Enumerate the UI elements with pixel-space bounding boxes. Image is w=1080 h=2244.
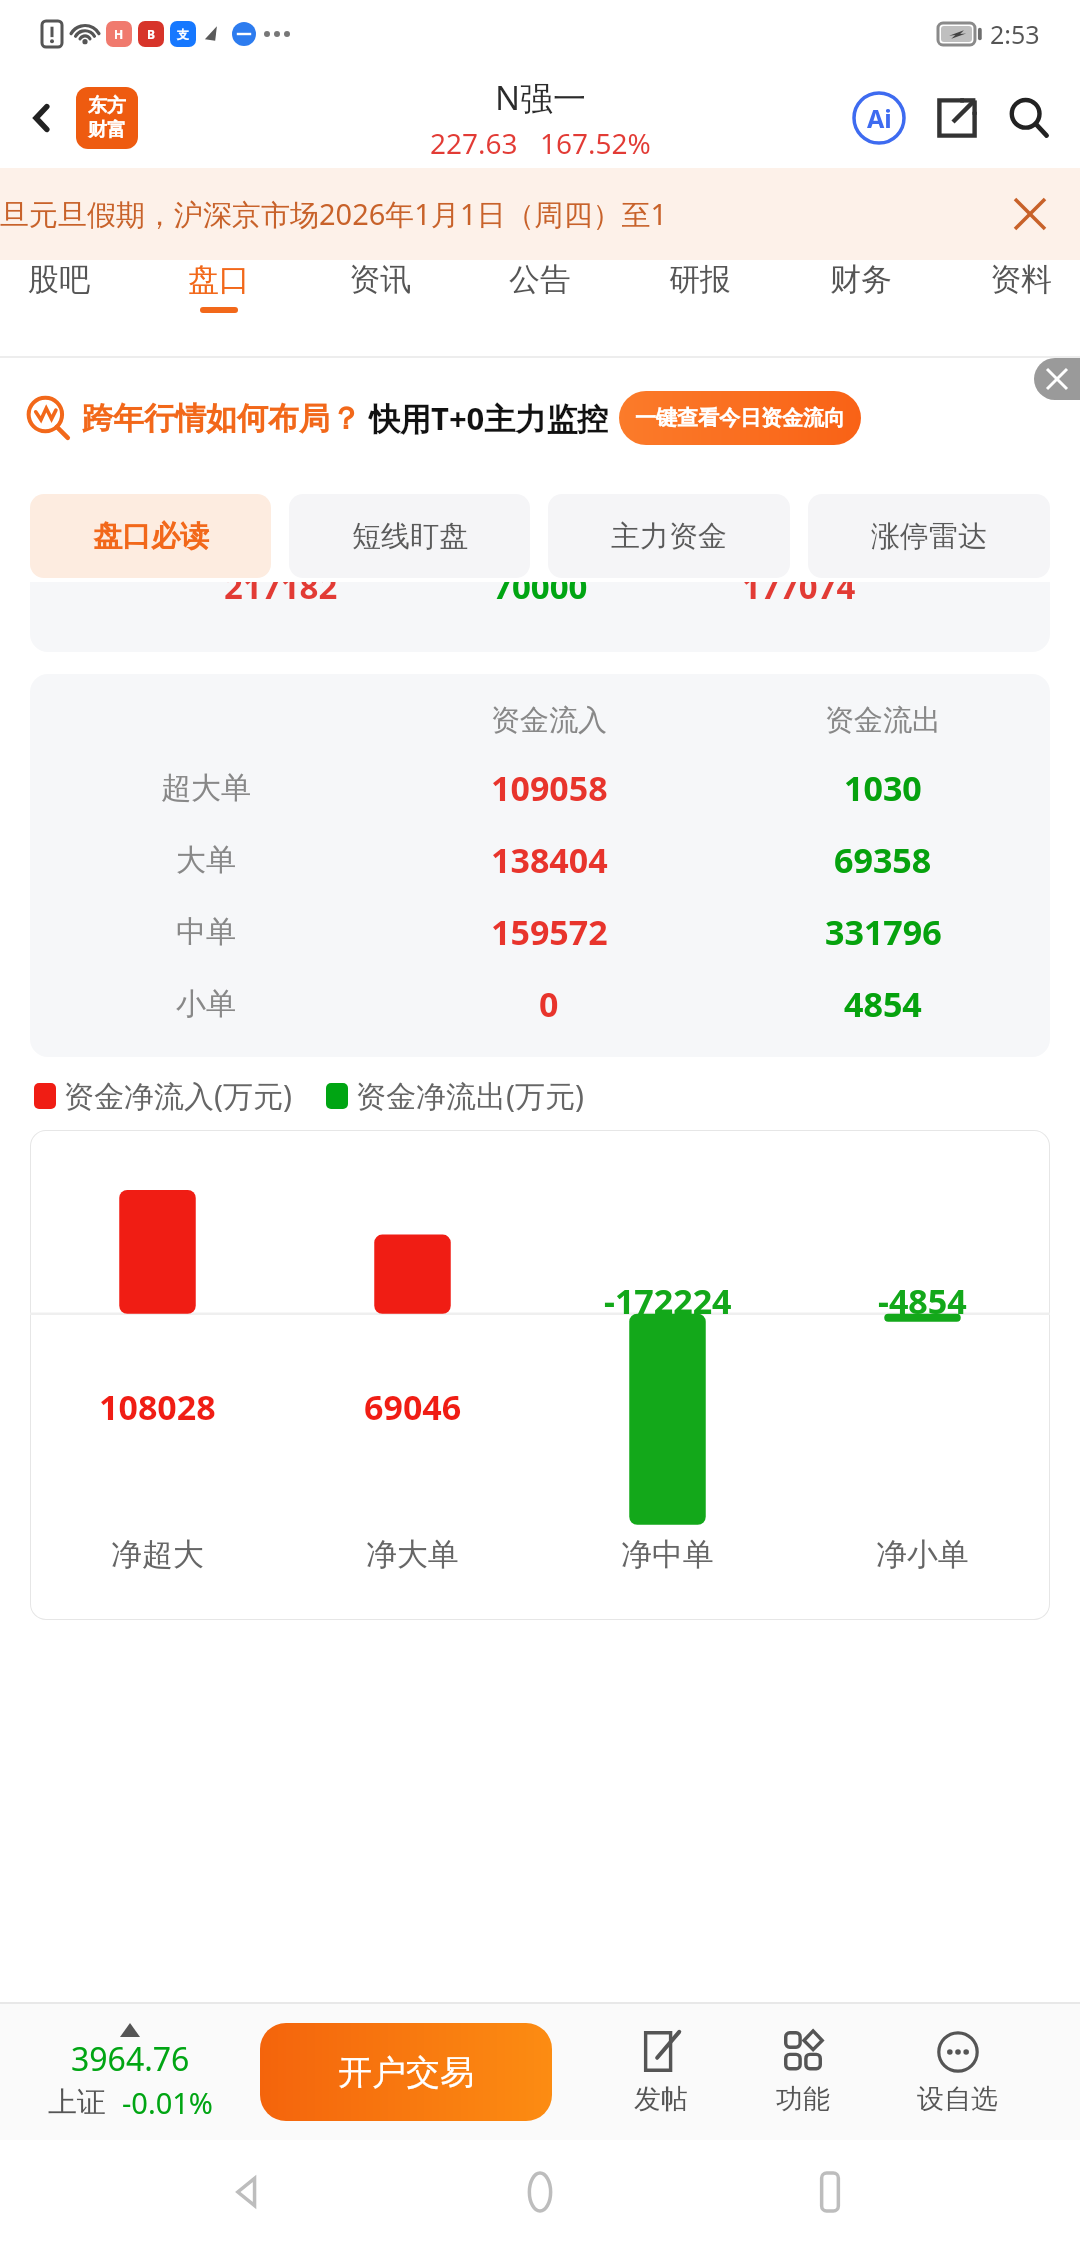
staticText: 短线盯盘 [352,518,468,555]
staticText: 3964.76 [71,2037,190,2081]
staticText: 70000 [493,582,588,609]
button[interactable]: 研报 [669,260,731,313]
staticText: 资金净流出(万元) [356,1075,584,1116]
staticText: 138404 [491,837,608,883]
staticText: 小单 [176,985,236,1023]
staticText: 109058 [491,765,608,811]
staticText: 主力资金 [611,518,727,555]
staticText: H [114,26,124,42]
staticText: 财务 [830,260,892,299]
button[interactable]: 资料 [990,260,1052,313]
staticText: 研报 [669,260,731,299]
staticText: 功能 [776,2082,830,2116]
staticText: 财富 [88,118,126,142]
staticText: 跨年行情如何布局？ [82,399,361,438]
staticText: 资金流入 [491,702,607,739]
staticText: 69358 [834,837,932,883]
button[interactable]: 涨停雷达 [808,494,1050,578]
staticText: 167.52% [540,124,651,162]
staticText: 177074 [742,582,856,609]
staticText: 盘口 [188,260,250,299]
staticText: 设自选 [917,2082,998,2116]
staticText: 盘口必读 [93,518,209,555]
staticText: B [147,26,155,42]
staticText: 227.63 [430,124,518,162]
button[interactable]: 资讯 [349,260,411,313]
button[interactable]: 东方 [76,87,138,149]
button[interactable]: 短线盯盘 [289,494,530,578]
staticText: 217182 [224,582,338,609]
staticText: 2:53 [990,17,1040,51]
staticText: 上证 [48,2084,106,2121]
staticText: 涨停雷达 [871,518,987,555]
button[interactable]: 主力资金 [548,494,790,578]
staticText: 资料 [990,260,1052,299]
staticText: 0 [539,981,559,1027]
staticText: 发帖 [634,2082,688,2116]
staticText: 资讯 [349,260,411,299]
button[interactable]: 关闭广告 [1034,358,1080,400]
button[interactable]: 返回 [210,2152,290,2232]
button[interactable]: 搜索 [1000,89,1058,147]
staticText: 公告 [509,260,571,299]
button[interactable]: 盘口必读 [30,494,271,578]
button[interactable]: 开户交易 [260,2023,552,2121]
button[interactable]: 分享 [928,89,986,147]
button[interactable]: 跨年行情如何布局？ [26,391,1060,445]
staticText: 一键查看今日资金流向 [635,405,845,431]
staticText: 4854 [844,981,922,1027]
staticText: 旦元旦假期，沪深京市场2026年1月1日（周四）至1 [0,194,668,234]
button[interactable]: 功能 [776,2028,830,2116]
staticText: 股吧 [28,260,90,299]
button[interactable]: 盘口 [188,260,250,313]
button[interactable]: 3964.76 [0,2023,260,2122]
staticText: 1030 [844,765,922,811]
staticText: -0.01% [122,2083,213,2122]
staticText: Ai [867,101,892,135]
staticText: 159572 [491,909,608,955]
button[interactable]: 主屏幕 [500,2152,580,2232]
staticText: 资金流出 [825,702,941,739]
staticText: N强一 [495,75,587,120]
staticText: -4854 [878,1278,967,1324]
staticText: 开户交易 [338,2051,474,2094]
staticText: 净小单 [876,1535,969,1574]
staticText: 净超大 [111,1535,204,1574]
staticText: 331796 [825,909,942,955]
button[interactable]: 股吧 [28,260,90,313]
button[interactable]: 财务 [830,260,892,313]
staticText: 净大单 [366,1535,459,1574]
button[interactable]: 返回 [14,90,70,146]
staticText: 东方 [88,94,126,118]
staticText: 支 [177,27,189,42]
staticText: 中单 [176,913,236,951]
staticText: 净中单 [621,1535,714,1574]
staticText: 大单 [176,841,236,879]
staticText: 资金净流入(万元) [64,1075,292,1116]
button[interactable]: 关闭公告 [1002,186,1058,242]
button[interactable]: 设自选 [917,2028,998,2116]
staticText: -172224 [604,1278,732,1324]
button[interactable]: 发帖 [634,2028,688,2116]
staticText: 超大单 [161,769,251,807]
button[interactable]: 一键查看今日资金流向 [635,391,845,445]
button[interactable]: 公告 [509,260,571,313]
button[interactable]: 最近任务 [790,2152,870,2232]
staticText: 69046 [364,1384,462,1430]
staticText: 快用T+0主力监控 [369,397,609,439]
staticText: 108028 [99,1384,216,1430]
button[interactable]: AI 助手 [848,87,910,149]
